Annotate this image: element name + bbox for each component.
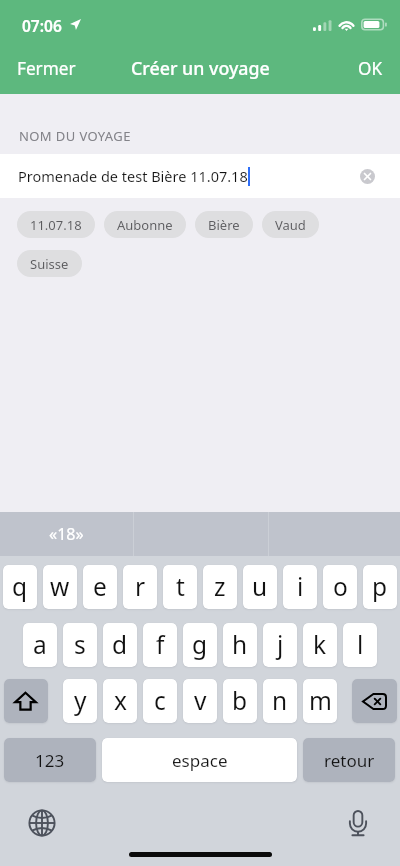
staticText: Vaud — [275, 216, 306, 234]
button[interactable]: k — [303, 623, 337, 667]
button[interactable]: Change keyboard — [28, 809, 56, 837]
button[interactable]: retour — [303, 738, 395, 782]
button[interactable]: Dictation — [344, 809, 372, 837]
staticText: m — [309, 684, 332, 717]
staticText: r — [135, 570, 146, 603]
button[interactable]: h — [223, 623, 257, 667]
button[interactable]: t — [163, 565, 197, 609]
staticText: p — [372, 570, 388, 603]
button[interactable]: y — [63, 679, 97, 723]
staticText: c — [154, 684, 166, 717]
staticText: Suisse — [30, 255, 69, 273]
button[interactable]: s — [63, 623, 97, 667]
staticText: 123 — [35, 749, 65, 772]
button[interactable]: d — [103, 623, 137, 667]
staticText: s — [74, 628, 86, 661]
staticText: o — [333, 570, 348, 603]
staticText: i — [297, 570, 304, 603]
button[interactable]: c — [143, 679, 177, 723]
staticText: Promenade de test Bière 11.07.18 — [18, 166, 248, 186]
button[interactable]: Shift — [4, 679, 48, 723]
staticText: espace — [172, 749, 228, 772]
staticText: NOM DU VOYAGE — [19, 127, 131, 145]
staticText: Créer un voyage — [131, 56, 270, 80]
button[interactable]: x — [103, 679, 137, 723]
staticText: g — [192, 628, 208, 661]
staticText: «18» — [49, 523, 84, 545]
staticText: u — [252, 570, 268, 603]
staticText: b — [232, 684, 248, 717]
staticText: z — [214, 570, 226, 603]
staticText: t — [176, 570, 185, 603]
button[interactable]: m — [303, 679, 337, 723]
button[interactable]: f — [143, 623, 177, 667]
button[interactable]: l — [343, 623, 377, 667]
staticText: v — [194, 684, 207, 717]
button[interactable]: w — [43, 565, 77, 609]
staticText: 07:06 — [22, 15, 62, 36]
button[interactable]: q — [3, 565, 37, 609]
button[interactable]: Clear text — [360, 169, 375, 184]
button[interactable]: Aubonne — [104, 211, 186, 238]
button[interactable]: 11.07.18 — [17, 211, 95, 238]
staticText: n — [272, 684, 288, 717]
staticText: a — [33, 628, 47, 661]
staticText: retour — [324, 749, 375, 772]
button[interactable]: u — [243, 565, 277, 609]
button[interactable]: j — [263, 623, 297, 667]
staticText: 11.07.18 — [30, 216, 82, 234]
staticText: h — [232, 628, 248, 661]
staticText: d — [112, 628, 128, 661]
button[interactable]: Backspace — [352, 679, 397, 723]
button[interactable]: Fermer — [0, 51, 90, 85]
staticText: OK — [358, 57, 383, 79]
button[interactable]: g — [183, 623, 217, 667]
staticText: x — [114, 684, 127, 717]
button[interactable]: Promenade de test Bière 11.07.18 — [0, 154, 400, 198]
button[interactable]: o — [323, 565, 357, 609]
staticText: Fermer — [17, 57, 76, 79]
button[interactable]: r — [123, 565, 157, 609]
button[interactable]: n — [263, 679, 297, 723]
staticText: q — [12, 570, 28, 603]
button[interactable]: Suisse — [17, 250, 82, 277]
staticText: j — [277, 628, 284, 661]
button[interactable]: b — [223, 679, 257, 723]
button[interactable]: e — [83, 565, 117, 609]
button[interactable]: p — [363, 565, 397, 609]
button[interactable]: a — [23, 623, 57, 667]
button[interactable]: Vaud — [262, 211, 319, 238]
staticText: Aubonne — [117, 216, 173, 234]
staticText: e — [93, 570, 107, 603]
button[interactable]: «18» — [0, 512, 133, 556]
staticText: y — [74, 684, 87, 717]
staticText: w — [50, 570, 70, 603]
button[interactable]: OK — [344, 51, 400, 85]
button[interactable]: v — [183, 679, 217, 723]
staticText: l — [357, 628, 364, 661]
button[interactable]: 123 — [4, 738, 96, 782]
button[interactable]: i — [283, 565, 317, 609]
button[interactable]: z — [203, 565, 237, 609]
button[interactable]: Bière — [195, 211, 253, 238]
staticText: Bière — [208, 216, 240, 234]
staticText: f — [156, 628, 165, 661]
staticText: k — [313, 628, 327, 661]
button[interactable]: espace — [102, 738, 297, 782]
